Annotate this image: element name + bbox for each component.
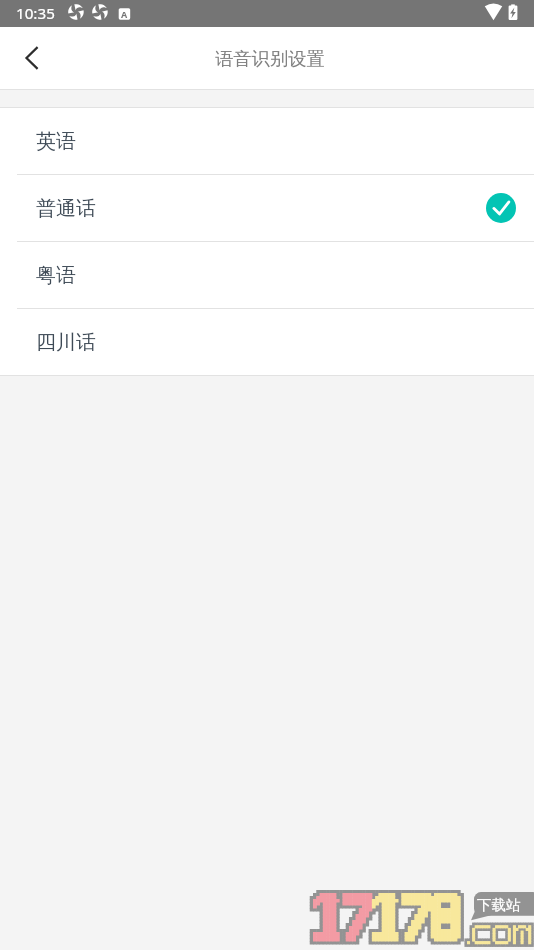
staticText: 四川话 [36, 330, 96, 355]
button[interactable]: 普通话 [0, 175, 534, 241]
staticText: 语音识别设置 [215, 47, 325, 70]
staticText: 10:35 [16, 3, 55, 24]
button[interactable]: 粤语 [0, 242, 534, 308]
staticText: 粤语 [36, 263, 76, 288]
staticText: A [121, 8, 128, 20]
staticText: 下载站 [477, 896, 521, 914]
button[interactable]: 四川话 [0, 309, 534, 375]
staticText: 普通话 [36, 196, 96, 221]
button[interactable]: 英语 [0, 108, 534, 174]
staticText: 英语 [36, 129, 76, 154]
button[interactable]: Back [9, 35, 55, 81]
